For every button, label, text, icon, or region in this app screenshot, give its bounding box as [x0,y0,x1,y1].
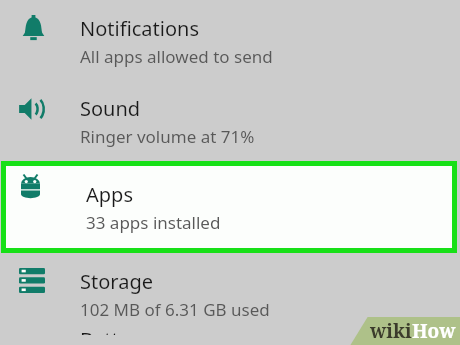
button[interactable]: Sound [0,82,460,160]
other: Sound [18,95,46,123]
staticText: 102 MB of 6.31 GB used [80,298,270,321]
other: Apps [18,174,43,199]
staticText: Apps [86,181,133,208]
button[interactable]: Notifications [0,0,460,82]
staticText: 33 apps installed [86,211,221,234]
staticText: Storage [80,268,153,295]
staticText: wiki [370,318,412,344]
button[interactable]: Storage [0,253,460,335]
other: Storage [19,268,45,294]
staticText: Notifications [80,15,199,42]
staticText: All apps allowed to send [80,45,273,68]
staticText: How [412,318,456,344]
staticText: Battery [80,326,149,335]
other: Notifications [20,15,47,42]
button[interactable]: Battery [0,336,460,345]
staticText: Sound [80,95,141,122]
button[interactable]: Apps [6,166,452,248]
staticText: Ringer volume at 71% [80,125,255,148]
